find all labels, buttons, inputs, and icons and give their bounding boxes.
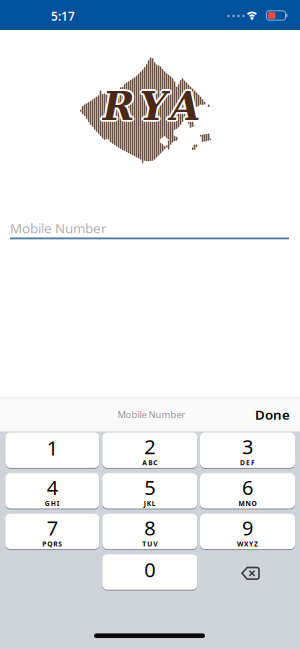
staticText: Done [255,406,290,423]
staticText: 6 [242,474,253,500]
button[interactable]: 1 [5,433,99,469]
staticText: 5:17 [51,8,75,24]
staticText: P Q R S [42,539,62,548]
button[interactable]: 7 [5,514,99,550]
staticText: 7 [47,514,58,541]
button[interactable]: 8 [102,514,197,550]
staticText: 2 [144,433,155,460]
staticText: RYA [104,84,202,129]
staticText: W X Y Z [237,539,258,548]
staticText: RYA [101,85,199,130]
staticText: 4 [47,474,58,500]
button[interactable]: 3 [200,433,295,469]
staticText: 1 [47,434,58,461]
staticText: RYA [102,85,200,131]
staticText: D E F [240,458,255,467]
staticText: M N O [238,499,256,508]
staticText: 8 [144,514,155,541]
staticText: 5 [144,474,155,500]
staticText: A B C [142,458,157,467]
staticText: RYA [102,84,200,129]
staticText: 9 [242,514,253,541]
button[interactable]: 9 [200,514,295,550]
button[interactable]: 0 [102,554,197,591]
staticText: RYA [101,84,199,129]
button[interactable]: Mobile Number [0,210,300,246]
staticText: J K L [144,499,156,508]
staticText: 0 [144,556,155,583]
staticText: RYA [104,85,202,130]
button[interactable]: Delete [230,558,270,588]
button[interactable]: 5 [102,473,197,509]
button[interactable]: 4 [5,473,99,509]
staticText: G H I [45,499,60,508]
staticText: Mobile Number [117,408,185,421]
button[interactable]: Done [247,397,297,431]
staticText: RYA [102,82,200,127]
staticText: 3 [242,433,253,460]
button[interactable]: 6 [200,473,295,509]
button[interactable]: 2 [102,433,197,469]
staticText: RYA [101,82,199,128]
staticText: T U V [142,539,157,548]
staticText: RYA [104,82,202,128]
staticText: Mobile Number [10,219,107,237]
